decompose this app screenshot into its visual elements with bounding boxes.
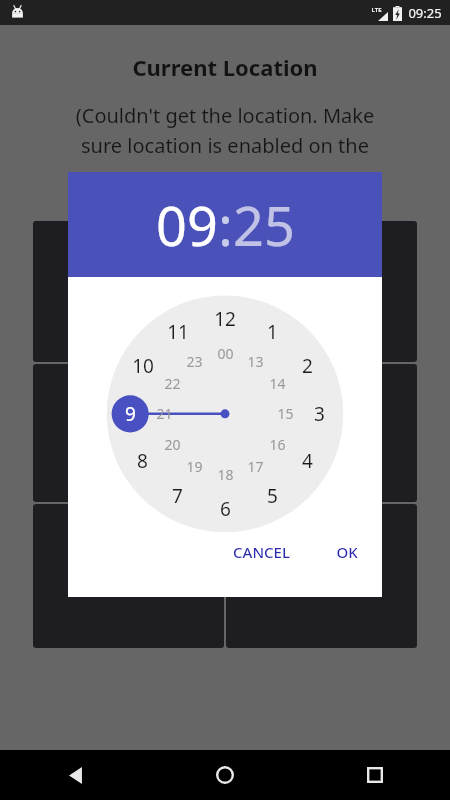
staticText: 23 xyxy=(186,352,203,371)
button[interactable]: 15 xyxy=(277,404,294,423)
button[interactable]: 12 xyxy=(214,306,236,332)
button[interactable]: 2 xyxy=(302,353,313,379)
button[interactable]: 8 xyxy=(137,448,148,474)
button[interactable]: 13 xyxy=(247,352,264,371)
button[interactable]: Recent apps xyxy=(300,750,450,800)
button[interactable]: 7 xyxy=(172,483,183,509)
button[interactable]: CANCEL xyxy=(225,539,298,565)
button[interactable]: A xyxy=(33,364,224,502)
staticText: 2 xyxy=(302,353,313,379)
staticText: 6 xyxy=(220,496,231,522)
button[interactable]: SAVED LOCATION PROFILES xyxy=(33,504,224,648)
button[interactable]: 9 xyxy=(125,401,136,427)
staticText: 12 xyxy=(214,306,236,332)
button[interactable] xyxy=(226,221,417,362)
button[interactable]: 22 xyxy=(164,374,181,393)
staticText: 15 xyxy=(277,404,294,423)
staticText: 1 xyxy=(267,319,278,345)
button[interactable]: 10 xyxy=(132,353,154,379)
button[interactable]: SETTINGS xyxy=(226,504,417,648)
staticText: Current Location xyxy=(132,52,318,82)
button[interactable]: 5 xyxy=(267,483,278,509)
button[interactable]: 1 xyxy=(267,319,278,345)
staticText: 3 xyxy=(314,401,325,427)
button[interactable]: 18 xyxy=(217,465,234,484)
button[interactable]: 3 xyxy=(314,401,325,427)
button[interactable]: 19 xyxy=(186,457,203,476)
staticText: OK xyxy=(336,542,358,562)
staticText: A xyxy=(124,423,134,443)
staticText: 20 xyxy=(164,435,181,454)
button[interactable]: Back xyxy=(0,750,150,800)
staticText: 7 xyxy=(172,483,183,509)
staticText: SAVED LOCATION PROFILES xyxy=(67,555,191,597)
button[interactable]: 09 xyxy=(156,188,218,262)
staticText: 16 xyxy=(269,435,286,454)
button[interactable]: 4 xyxy=(302,448,313,474)
button[interactable]: 17 xyxy=(247,457,264,476)
staticText: 09:25 xyxy=(408,4,442,22)
staticText: 9 xyxy=(125,401,136,427)
button[interactable]: 14 xyxy=(269,374,286,393)
staticText: LTE xyxy=(371,6,382,14)
staticText: 4 xyxy=(302,448,313,474)
staticText: 00 xyxy=(217,344,234,363)
button[interactable]: 16 xyxy=(269,435,286,454)
staticText: CANCEL xyxy=(233,542,290,562)
button[interactable]: 21 xyxy=(156,404,173,423)
staticText: 5 xyxy=(267,483,278,509)
button[interactable]: 20 xyxy=(164,435,181,454)
staticText: 21 xyxy=(156,404,173,423)
staticText: 11 xyxy=(167,319,189,345)
staticText: 17 xyxy=(247,457,264,476)
button[interactable]: 25 xyxy=(233,188,295,262)
button[interactable]: Home xyxy=(150,750,300,800)
staticText: 8 xyxy=(137,448,148,474)
button[interactable]: 23 xyxy=(186,352,203,371)
staticText: 10 xyxy=(132,353,154,379)
button[interactable]: 00 xyxy=(217,344,234,363)
staticText: (Couldn't get the location. Make sure lo… xyxy=(12,102,438,159)
button[interactable] xyxy=(33,221,224,362)
button[interactable]: 6 xyxy=(220,496,231,522)
staticText: 18 xyxy=(217,465,234,484)
staticText: 13 xyxy=(247,352,264,371)
staticText: : xyxy=(218,188,233,262)
button[interactable] xyxy=(226,364,417,502)
staticText: 19 xyxy=(186,457,203,476)
button[interactable]: 11 xyxy=(167,319,189,345)
staticText: 14 xyxy=(269,374,286,393)
button[interactable]: OK xyxy=(328,539,366,565)
staticText: 22 xyxy=(164,374,181,393)
